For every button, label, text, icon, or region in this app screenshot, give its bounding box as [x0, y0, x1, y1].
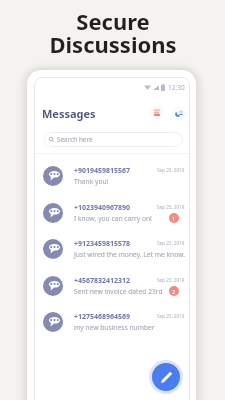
staticText: Sep 23, 2019 — [157, 240, 185, 246]
staticText: 2 — [172, 288, 176, 295]
staticText: Sep 23, 2019 — [157, 167, 185, 173]
staticText: Sent new invoice dated 23rd — [74, 287, 163, 296]
staticText: Sep 23, 2019 — [157, 313, 185, 319]
staticText: +1023940967890 — [74, 203, 131, 213]
button[interactable]: +4567832412312 — [34, 276, 190, 314]
button[interactable]: Search here — [44, 132, 183, 147]
staticText: Secure — [76, 6, 150, 36]
staticText: Just wired the money. Let me know. — [74, 250, 185, 259]
staticText: Messages — [42, 106, 96, 121]
staticText: Thank you! — [74, 177, 109, 186]
staticText: 12:30 — [168, 83, 185, 92]
button[interactable]: +1275468964569 — [34, 312, 190, 350]
button[interactable]: Compose message — [152, 363, 180, 391]
staticText: I know, you can carry on! — [74, 214, 152, 223]
staticText: Sep 23, 2019 — [157, 204, 185, 210]
button[interactable]: Filter — [150, 105, 164, 119]
button[interactable]: +9123459815578 — [34, 239, 190, 277]
staticText: Discussions — [49, 29, 177, 59]
staticText: Sep 23, 2019 — [157, 277, 185, 283]
button[interactable]: +1023940967890 — [34, 203, 190, 241]
staticText: my new business number — [74, 323, 155, 332]
button[interactable]: Dial pad — [172, 106, 186, 120]
staticText: Search here — [57, 135, 93, 144]
button[interactable]: +9019459815567 — [34, 166, 190, 204]
staticText: +9019459815567 — [74, 166, 131, 176]
staticText: 1 — [172, 215, 176, 222]
staticText: +1275468964569 — [74, 312, 131, 322]
staticText: +9123459815578 — [74, 239, 131, 249]
staticText: +4567832412312 — [74, 276, 131, 286]
